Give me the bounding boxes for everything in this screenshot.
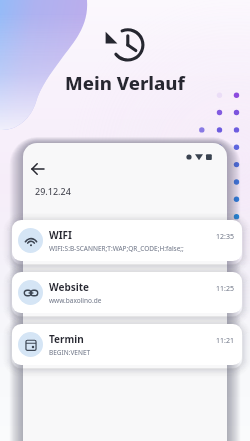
staticText: WIFI xyxy=(49,228,72,242)
staticText: Mein Verlauf xyxy=(65,70,185,95)
button[interactable]: Back xyxy=(28,159,48,179)
button[interactable]: Termin xyxy=(12,324,242,365)
staticText: 29.12.24 xyxy=(35,185,71,197)
staticText: 12:35 xyxy=(216,232,234,242)
staticText: 11:21 xyxy=(216,336,234,346)
staticText: BEGIN:VENET xyxy=(49,348,91,357)
staticText: Termin xyxy=(49,332,84,346)
staticText: 11:25 xyxy=(216,284,234,294)
staticText: WIFI:S:B-SCANNER;T:WAP;QR_CODE;H:false;; xyxy=(49,244,184,253)
button[interactable]: WIFI xyxy=(12,220,242,261)
button[interactable]: Website xyxy=(12,272,242,313)
staticText: Website xyxy=(49,280,90,294)
staticText: www.baxolino.de xyxy=(49,296,102,305)
